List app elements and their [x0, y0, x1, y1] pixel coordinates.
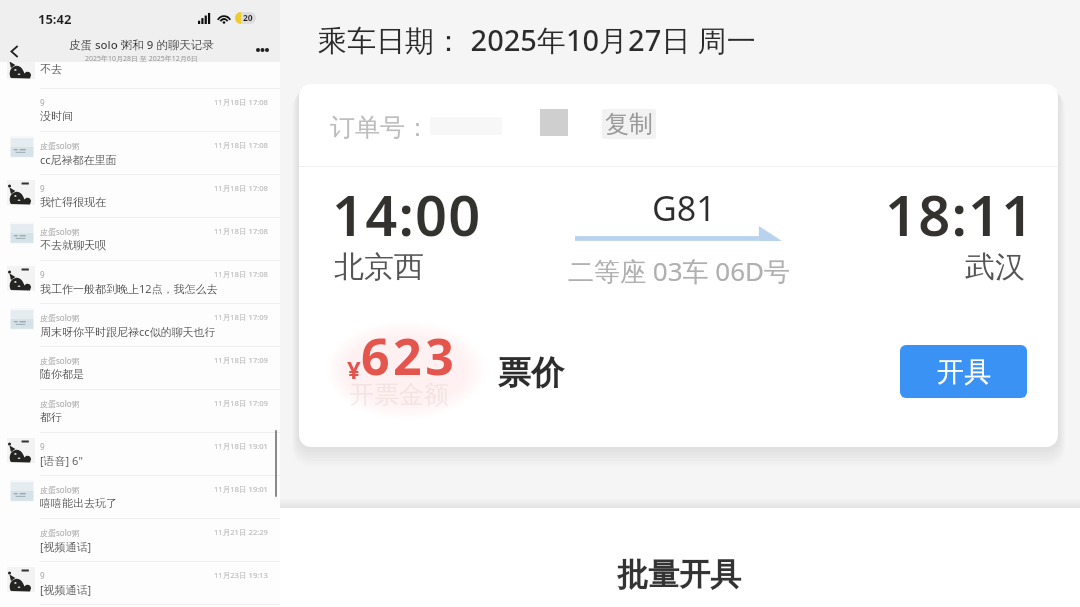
staticText: 不去就聊天呗 [40, 238, 106, 252]
button[interactable]: 9 [0, 562, 280, 605]
button[interactable]: 皮蛋solo粥 [0, 347, 280, 390]
staticText: 开具 [937, 355, 991, 389]
staticText: [视频通话] [40, 539, 92, 554]
staticText: 周末呀你平时跟尼禄cc似的聊天也行 [40, 324, 216, 339]
staticText: 皮蛋solo粥 [40, 140, 80, 151]
staticText: 皮蛋solo粥 [40, 312, 80, 323]
staticText: 11月18日 17:09 [214, 312, 268, 322]
staticText: 11月18日 17:08 [214, 140, 268, 150]
button[interactable]: 皮蛋solo粥 [0, 218, 280, 261]
staticText: 皮蛋solo粥 [40, 484, 80, 495]
button[interactable]: 皮蛋solo粥 [0, 132, 280, 175]
staticText: 11月18日 17:08 [214, 97, 268, 107]
staticText: 皮蛋solo粥 [40, 226, 80, 237]
staticText: 批量开具 [617, 555, 741, 594]
staticText: 11月21日 22:29 [214, 527, 268, 537]
button[interactable]: 不去 [0, 62, 280, 88]
staticText: 9 [40, 441, 45, 452]
button[interactable]: 皮蛋solo粥 [0, 476, 280, 519]
staticText: 我工作一般都到晚上12点，我怎么去 [40, 281, 218, 296]
staticText: 皮蛋solo粥 [40, 527, 80, 538]
button[interactable]: 皮蛋solo粥 [0, 519, 280, 562]
staticText: 15:42 [38, 10, 72, 28]
staticText: 11月18日 19:01 [214, 441, 268, 451]
staticText: 开票金额 [349, 379, 449, 410]
staticText: 皮蛋solo粥 [40, 355, 80, 366]
staticText: 11月18日 17:08 [214, 183, 268, 193]
button[interactable]: 9 [0, 433, 280, 476]
button[interactable]: Back [0, 37, 28, 65]
button[interactable]: 开具 [900, 345, 1027, 398]
staticText: 2025年10月28日 至 2025年12月6日 [85, 54, 198, 64]
staticText: 9 [40, 97, 45, 108]
button[interactable]: 皮蛋solo粥 [0, 390, 280, 433]
staticText: [视频通话] [40, 582, 92, 597]
button[interactable]: 9 [0, 261, 280, 304]
staticText: ¥ [347, 353, 361, 386]
staticText: 乘车日期： 2025年10月27日 周一 [318, 20, 756, 60]
staticText: 皮蛋solo粥 [40, 398, 80, 409]
staticText: 11月18日 17:09 [214, 398, 268, 408]
button[interactable]: 9 [0, 175, 280, 218]
staticText: 二等座 03车 06D号 [568, 253, 790, 289]
staticText: 都行 [40, 410, 62, 424]
staticText: G81 [652, 185, 716, 231]
staticText: 武汉 [965, 248, 1025, 286]
staticText: 皮蛋 solo 粥和 9 的聊天记录 [69, 37, 214, 53]
staticText: 623 [361, 322, 458, 390]
staticText: 9 [40, 269, 45, 280]
staticText: cc尼禄都在里面 [40, 152, 117, 167]
staticText: 11月18日 17:08 [214, 226, 268, 236]
staticText: 20 [243, 12, 253, 24]
staticText: 复制 [605, 109, 653, 139]
staticText: 18:11 [885, 176, 1035, 252]
staticText: 嘻嘻能出去玩了 [40, 496, 117, 510]
staticText: 9 [40, 570, 45, 581]
button[interactable]: 皮蛋solo粥 [0, 304, 280, 347]
staticText: 没时间 [40, 109, 73, 123]
staticText: [语音] 6" [40, 453, 83, 468]
staticText: 我忙得很现在 [40, 195, 106, 209]
staticText: 9 [40, 183, 45, 194]
staticText: 随你都是 [40, 367, 84, 381]
button[interactable]: 批量开具 [617, 555, 741, 594]
staticText: 订单号： [330, 112, 430, 143]
button[interactable]: More options [250, 38, 274, 62]
button[interactable]: 9 [0, 89, 280, 132]
staticText: 票价 [498, 352, 564, 394]
staticText: 14:00 [332, 176, 482, 252]
staticText: 11月18日 17:09 [214, 355, 268, 365]
staticText: 11月23日 19:13 [214, 570, 268, 580]
staticText: 不去 [40, 62, 62, 76]
staticText: 11月18日 19:01 [214, 484, 268, 494]
staticText: 11月18日 17:08 [214, 269, 268, 279]
staticText: 北京西 [334, 248, 424, 286]
button[interactable]: 复制 [602, 109, 656, 139]
